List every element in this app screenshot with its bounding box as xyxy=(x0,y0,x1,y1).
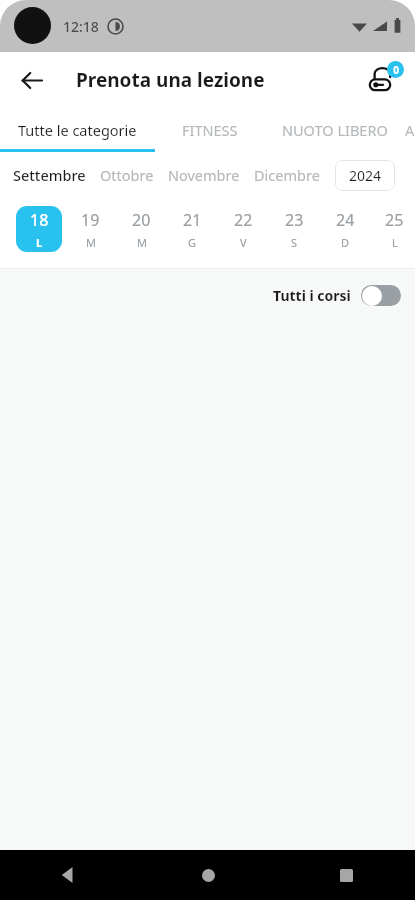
staticText: 25 xyxy=(385,209,404,231)
staticText: 23 xyxy=(285,209,304,231)
staticText: L xyxy=(36,235,43,250)
staticText: Tutte le categorie xyxy=(18,120,137,140)
staticText: Novembre xyxy=(168,165,240,185)
button[interactable]: Ottobre xyxy=(100,165,154,185)
button[interactable]: Back xyxy=(46,852,92,898)
staticText: Settembre xyxy=(13,165,86,185)
button[interactable]: 24 xyxy=(322,206,368,252)
button[interactable]: 25 xyxy=(373,206,415,252)
staticText: 12:18 xyxy=(63,17,99,36)
staticText: 22 xyxy=(234,209,253,231)
button[interactable]: Novembre xyxy=(168,165,240,185)
button[interactable]: 23 xyxy=(271,206,317,252)
button[interactable]: NUOTO LIBERO xyxy=(265,107,405,152)
staticText: 20 xyxy=(132,209,151,231)
button[interactable]: Tutte le categorie xyxy=(0,107,155,152)
staticText: S xyxy=(291,235,298,250)
button[interactable]: 20 xyxy=(118,206,164,252)
button[interactable]: 22 xyxy=(220,206,266,252)
staticText: M xyxy=(86,235,96,250)
staticText: 0 xyxy=(393,63,399,77)
button[interactable]: A xyxy=(405,107,415,152)
button[interactable]: 19 xyxy=(67,206,113,252)
staticText: 18 xyxy=(30,209,49,231)
staticText: A xyxy=(405,120,415,140)
button[interactable]: Dicembre xyxy=(254,165,320,185)
staticText: Ottobre xyxy=(100,165,154,185)
staticText: 24 xyxy=(336,209,355,231)
staticText: L xyxy=(392,235,398,250)
button[interactable]: Home xyxy=(185,852,231,898)
staticText: M xyxy=(137,235,147,250)
staticText: G xyxy=(188,235,197,250)
button[interactable]: FITNESS xyxy=(155,107,265,152)
button[interactable] xyxy=(361,285,401,306)
button[interactable]: Locker xyxy=(362,59,404,101)
staticText: 19 xyxy=(81,209,100,231)
button[interactable]: 18 xyxy=(16,206,62,252)
staticText: 21 xyxy=(183,209,202,231)
staticText: D xyxy=(341,235,350,250)
staticText: NUOTO LIBERO xyxy=(282,120,388,140)
button[interactable]: Tutti i corsi xyxy=(273,285,401,306)
staticText: 2024 xyxy=(349,166,382,185)
button[interactable]: Back xyxy=(12,61,50,99)
staticText: FITNESS xyxy=(182,120,238,140)
staticText: Prenota una lezione xyxy=(76,67,265,93)
button[interactable]: Settembre xyxy=(13,165,86,185)
staticText: V xyxy=(240,235,247,250)
button[interactable]: 2024 xyxy=(335,160,395,191)
staticText: Tutti i corsi xyxy=(273,286,351,305)
staticText: Dicembre xyxy=(254,165,320,185)
button[interactable]: Recents xyxy=(323,852,369,898)
button[interactable]: 21 xyxy=(169,206,215,252)
